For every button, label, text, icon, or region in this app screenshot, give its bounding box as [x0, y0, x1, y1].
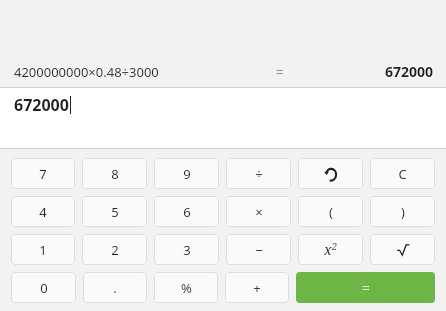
staticText: 4 [39, 203, 47, 221]
staticText: 1 [39, 241, 47, 259]
button[interactable]: ÷ [226, 158, 291, 189]
staticText: ) [401, 203, 405, 221]
button[interactable]: 2 [82, 234, 147, 265]
button[interactable]: 6 [154, 196, 219, 227]
button[interactable]: ) [370, 196, 435, 227]
button[interactable]: 7 [11, 158, 75, 189]
staticText: 2 [332, 240, 338, 252]
button[interactable]: − [226, 234, 291, 265]
button[interactable]: % [154, 272, 218, 303]
staticText: . [113, 279, 117, 297]
staticText: 672000 [14, 94, 69, 116]
button[interactable]: ( [298, 196, 363, 227]
button[interactable]: 4200000000×0.48÷3000 [0, 56, 446, 87]
button[interactable]: 4 [11, 196, 75, 227]
button[interactable]: C [370, 158, 435, 189]
staticText: + [253, 279, 261, 297]
staticText: 3 [183, 241, 191, 259]
button[interactable]: + [225, 272, 289, 303]
button[interactable]: 0 [11, 272, 76, 303]
staticText: = [362, 279, 370, 297]
staticText: 4200000000×0.48÷3000 [14, 63, 159, 81]
button[interactable]: 3 [154, 234, 219, 265]
staticText: = [276, 63, 284, 81]
staticText: 0 [40, 279, 48, 297]
button[interactable]: 9 [154, 158, 219, 189]
button[interactable]: x [298, 234, 363, 265]
staticText: × [255, 203, 263, 221]
button[interactable]: Square root [370, 234, 435, 265]
staticText: 5 [111, 203, 119, 221]
button[interactable]: 672000 [0, 88, 446, 148]
staticText: ( [329, 203, 333, 221]
button[interactable]: × [226, 196, 291, 227]
staticText: ÷ [255, 165, 263, 183]
button[interactable]: 1 [11, 234, 75, 265]
button[interactable]: 5 [82, 196, 147, 227]
staticText: 8 [111, 165, 119, 183]
staticText: x [324, 240, 332, 259]
staticText: C [398, 165, 407, 183]
staticText: 9 [183, 165, 191, 183]
staticText: − [255, 241, 263, 259]
button[interactable]: 8 [82, 158, 147, 189]
staticText: 7 [39, 165, 47, 183]
staticText: 2 [111, 241, 119, 259]
button[interactable]: . [83, 272, 147, 303]
staticText: 672000 [385, 62, 434, 81]
staticText: % [181, 279, 192, 297]
button[interactable]: = [296, 272, 435, 303]
staticText: 6 [183, 203, 191, 221]
button[interactable]: Undo [298, 158, 363, 189]
